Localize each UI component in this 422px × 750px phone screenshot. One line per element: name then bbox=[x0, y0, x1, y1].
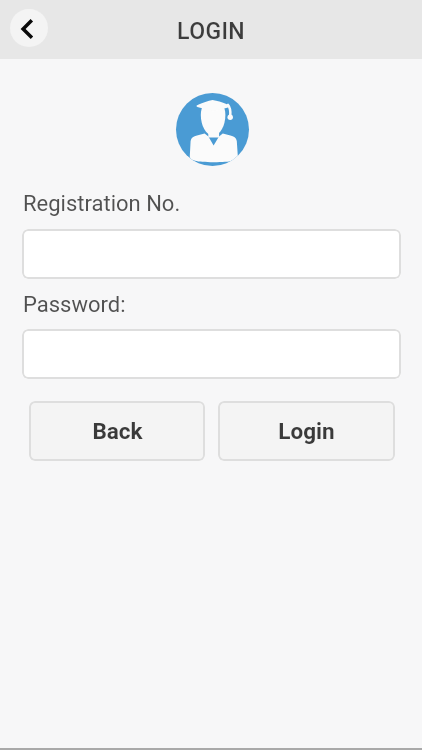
button[interactable]: Back bbox=[29, 401, 205, 461]
staticText: Password: bbox=[23, 292, 126, 318]
staticText: LOGIN bbox=[177, 18, 246, 45]
button[interactable]: Login bbox=[218, 401, 395, 461]
button[interactable] bbox=[22, 229, 401, 279]
button[interactable]: Back bbox=[10, 9, 48, 47]
staticText: Back bbox=[92, 418, 143, 444]
button[interactable] bbox=[22, 329, 401, 379]
staticText: Registration No. bbox=[23, 191, 181, 217]
staticText: Login bbox=[278, 418, 335, 444]
